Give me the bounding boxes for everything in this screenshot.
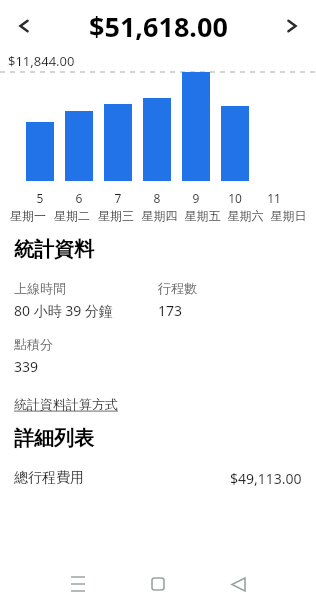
staticText: 339: [14, 357, 39, 376]
staticText: 詳細列表: [14, 426, 94, 451]
staticText: $49,113.00: [230, 469, 302, 488]
staticText: 11: [260, 190, 288, 206]
staticText: 星期一: [6, 208, 50, 223]
button[interactable]: Previous week: [8, 10, 40, 42]
staticText: 星期二: [50, 208, 94, 223]
staticText: 點積分: [14, 336, 53, 352]
staticText: 7: [104, 190, 132, 206]
staticText: 星期三: [94, 208, 138, 223]
staticText: 5: [26, 190, 54, 206]
staticText: 10: [221, 190, 249, 206]
button[interactable]: Next week: [276, 10, 308, 42]
staticText: 統計資料計算方式: [14, 396, 118, 412]
staticText: 統計資料: [14, 237, 94, 262]
button[interactable]: 統計資料計算方式: [14, 396, 118, 412]
staticText: 80 小時 39 分鐘: [14, 301, 113, 320]
staticText: 173: [158, 301, 183, 320]
button[interactable]: Home: [142, 568, 174, 600]
staticText: 星期五: [181, 208, 224, 223]
button[interactable]: Back: [222, 568, 254, 600]
staticText: 9: [182, 190, 210, 206]
staticText: 上線時間: [14, 280, 66, 296]
staticText: 行程數: [158, 280, 197, 296]
staticText: 星期六: [224, 208, 267, 223]
button[interactable]: 總行程費用: [14, 469, 302, 488]
staticText: $51,618.00: [89, 8, 228, 45]
staticText: $11,844.00: [8, 52, 75, 70]
staticText: 6: [65, 190, 93, 206]
staticText: 星期日: [267, 208, 310, 223]
staticText: 星期四: [138, 208, 181, 223]
button[interactable]: Recent apps: [62, 568, 94, 600]
staticText: 總行程費用: [14, 469, 84, 487]
staticText: 8: [143, 190, 171, 206]
